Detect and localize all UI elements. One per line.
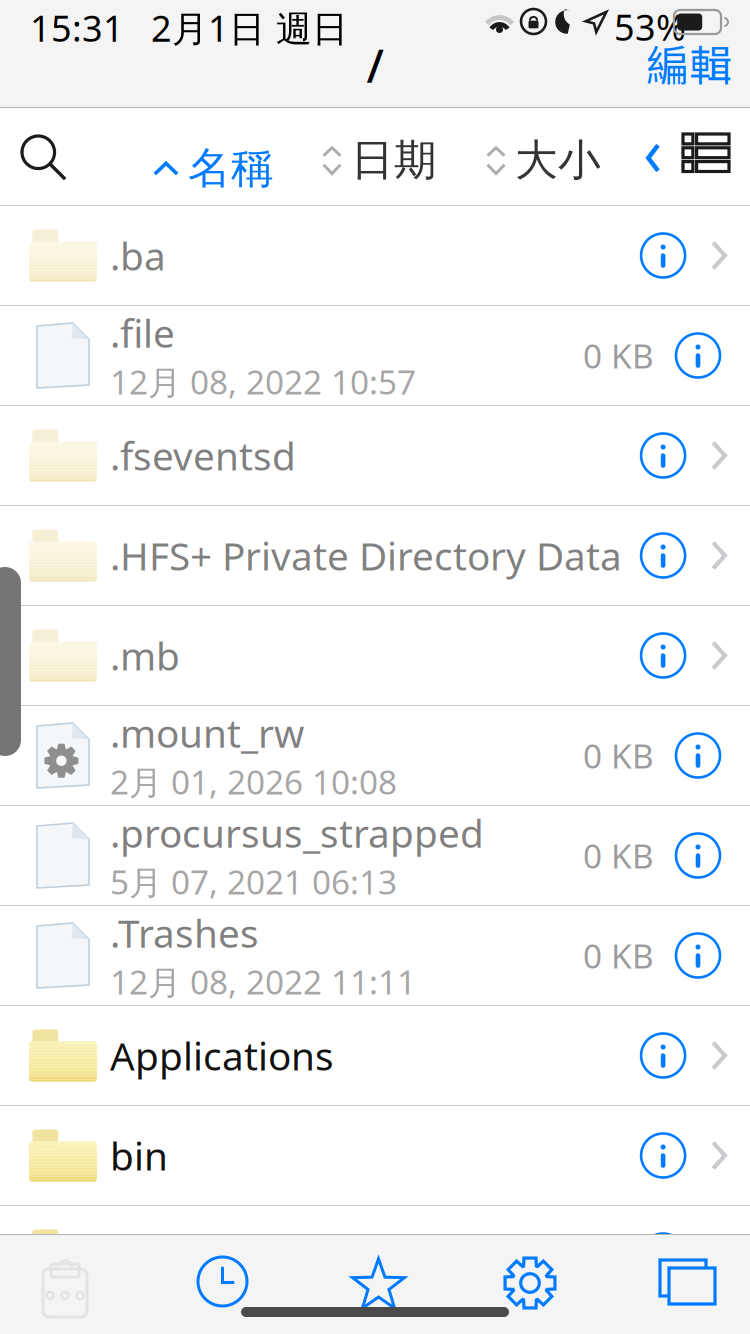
staticText: 53% [614,3,686,51]
button[interactable]: .ba [0,206,750,306]
button[interactable]: Recent [190,1249,255,1314]
button[interactable]: .HFS+ Private Directory Data [0,506,750,606]
button[interactable]: boot [0,1206,750,1306]
staticText: Applications [110,1030,334,1081]
staticText: 0 KB [583,733,654,778]
button[interactable]: bin [0,1106,750,1206]
button[interactable]: .file [0,306,750,406]
staticText: .ba [110,230,166,281]
staticText: .file [110,307,175,358]
staticText: 編輯 [646,32,732,94]
button[interactable]: 日期 [316,128,443,192]
staticText: 名稱 [188,142,274,194]
staticText: 日期 [351,134,437,186]
button[interactable]: Clipboard [33,1245,97,1321]
button[interactable]: Applications [0,1006,750,1106]
button[interactable]: Favorites [343,1250,414,1320]
button[interactable]: .mb [0,606,750,706]
staticText: .fseventsd [110,430,296,481]
button[interactable]: 編輯 [630,22,748,104]
button[interactable]: Search [12,126,76,190]
staticText: 大小 [515,134,601,186]
button[interactable]: .procursus_strapped [0,806,750,906]
button[interactable]: Settings [495,1248,565,1318]
button[interactable]: View mode [674,125,738,180]
button[interactable]: Windows [652,1252,723,1312]
staticText: 0 KB [583,833,654,878]
button[interactable]: .Trashes [0,906,750,1006]
staticText: 0 KB [583,933,654,978]
button[interactable]: .mount_rw [0,706,750,806]
staticText: .HFS+ Private Directory Data [110,530,622,581]
staticText: 5月 07, 2021 06:13 [110,859,397,904]
staticText: .mount_rw [110,707,304,758]
staticText: / [366,35,383,95]
button[interactable]: .fseventsd [0,406,750,506]
staticText: 12月 08, 2022 11:11 [110,959,416,1004]
staticText: 0 KB [583,333,654,378]
staticText: .procursus_strapped [110,807,484,858]
staticText: 2月 01, 2026 10:08 [110,759,397,804]
button[interactable]: 大小 [480,128,607,192]
staticText: bin [110,1130,168,1181]
staticText: .Trashes [110,907,259,958]
staticText: .mb [110,630,180,681]
button[interactable]: 名稱 [147,132,280,204]
staticText: 15:31 2月1日 週日 [30,4,348,52]
staticText: 12月 08, 2022 10:57 [110,359,416,404]
staticText: boot [110,1230,194,1281]
button[interactable]: Back [634,131,672,185]
